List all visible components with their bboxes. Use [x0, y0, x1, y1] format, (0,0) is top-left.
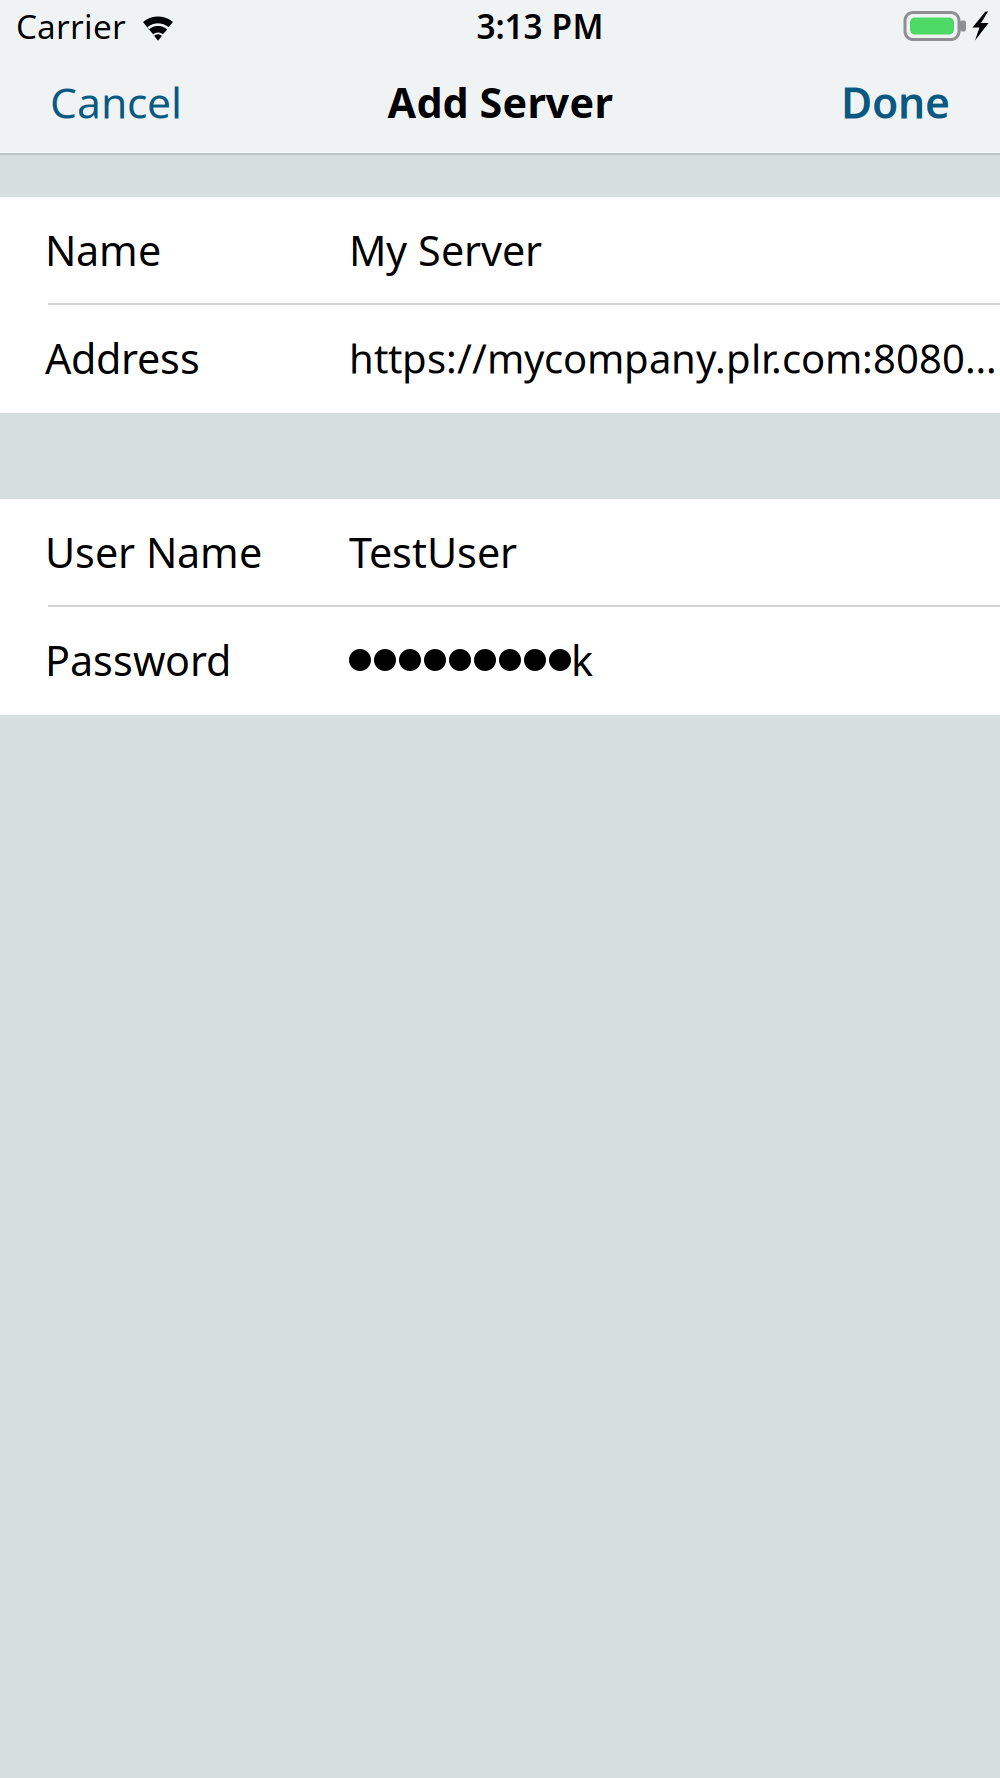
button[interactable]: Done: [825, 52, 1000, 152]
button[interactable]: Address: [0, 305, 1000, 413]
staticText: Done: [841, 74, 950, 130]
staticText: Address: [45, 331, 200, 385]
button[interactable]: User Name: [0, 499, 1000, 607]
staticText: Add Server: [387, 75, 612, 129]
staticText: User Name: [45, 525, 262, 579]
button[interactable]: Password: [0, 607, 1000, 715]
button[interactable]: Cancel: [0, 52, 198, 152]
staticText: Cancel: [50, 74, 182, 130]
staticText: 3:13 PM: [476, 4, 603, 48]
staticText: My Server: [349, 223, 542, 277]
staticText: Carrier: [16, 4, 126, 48]
button[interactable]: Name: [0, 197, 1000, 305]
staticText: https://mycompany.plr.com:8080…: [349, 331, 997, 384]
staticText: Password: [45, 633, 231, 687]
staticText: TestUser: [349, 525, 517, 579]
staticText: Name: [45, 223, 161, 277]
staticText: k: [571, 633, 593, 687]
